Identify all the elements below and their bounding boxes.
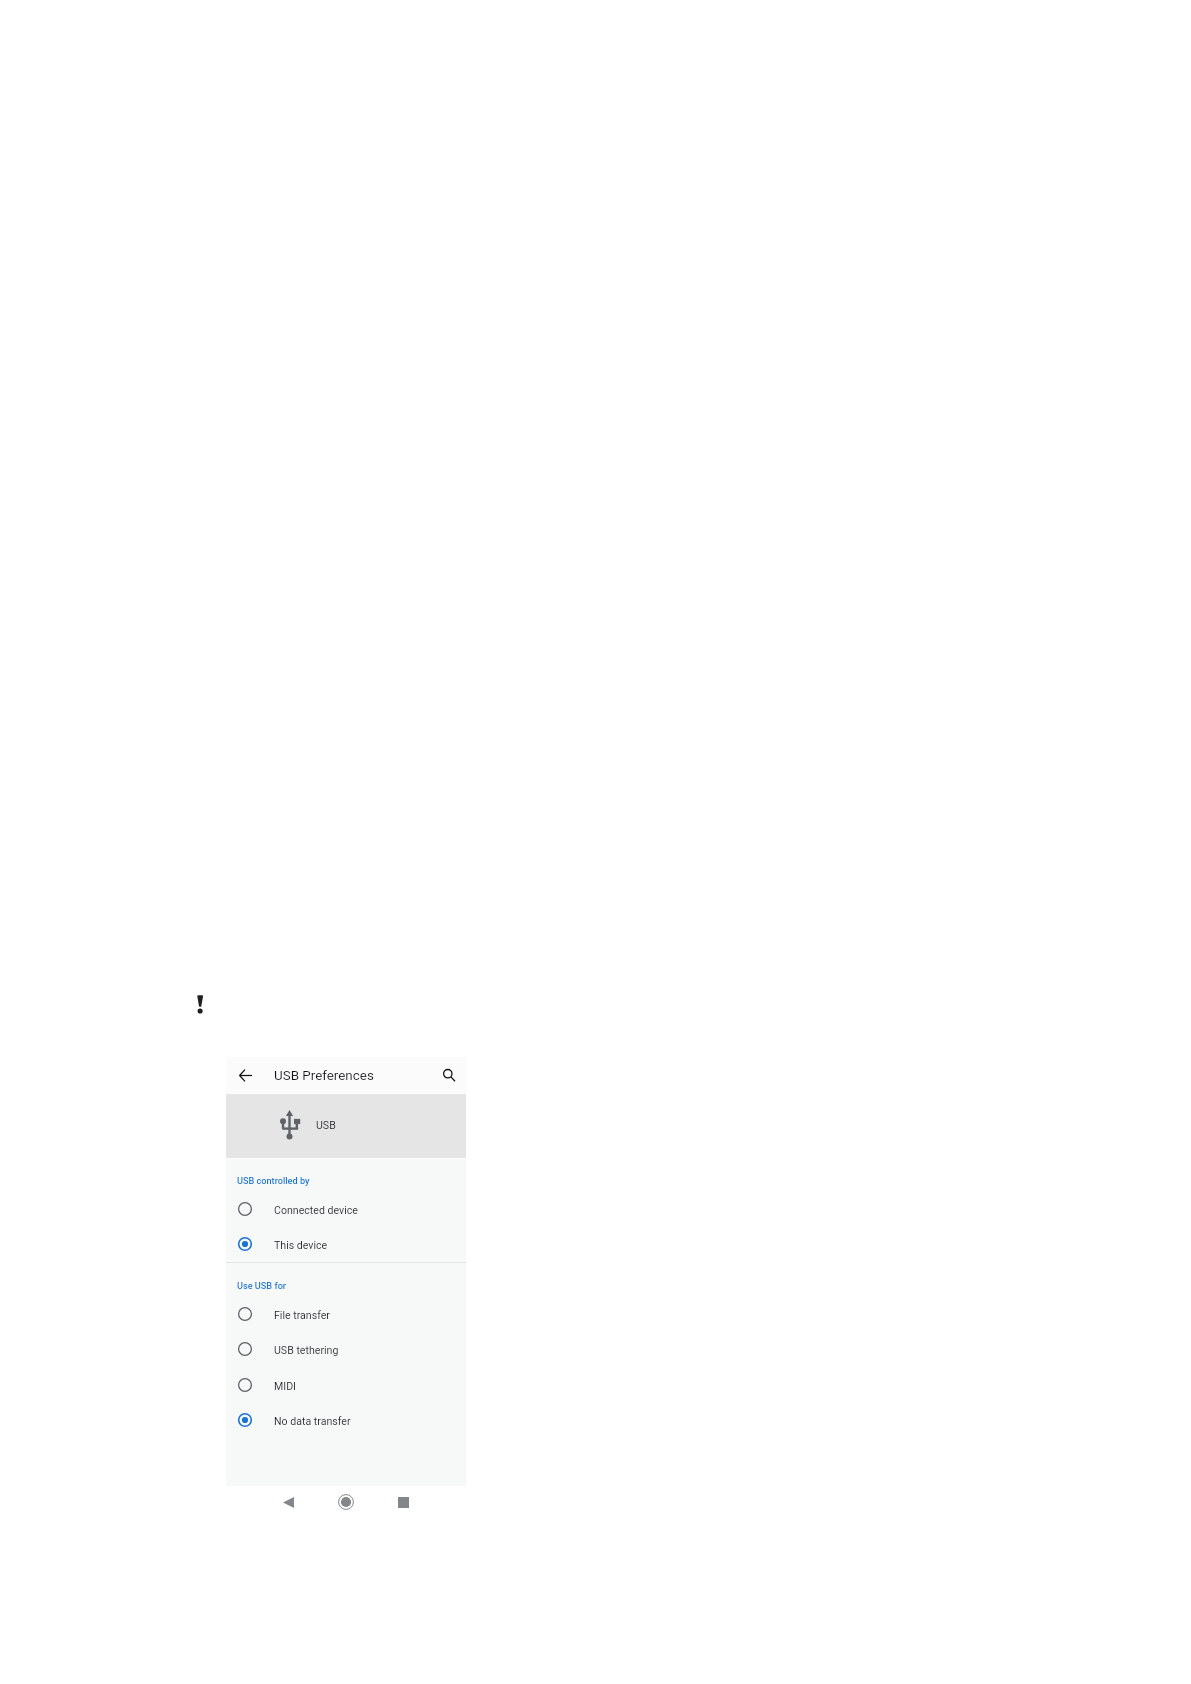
button[interactable]: Back <box>232 1062 258 1088</box>
button[interactable]: No data transfer <box>226 1403 466 1437</box>
button[interactable]: Search <box>436 1063 462 1089</box>
button[interactable]: Connected device <box>226 1192 466 1226</box>
button[interactable]: USB tethering <box>226 1332 466 1366</box>
button[interactable]: Back <box>275 1489 302 1516</box>
staticText: This device <box>274 1239 328 1251</box>
staticText: No data transfer <box>274 1415 351 1427</box>
staticText: USB tethering <box>274 1344 339 1356</box>
staticText: Use USB for <box>237 1281 287 1292</box>
staticText: MIDI <box>274 1380 296 1392</box>
staticText: Connected device <box>274 1204 358 1216</box>
button[interactable]: USB <box>226 1094 466 1158</box>
staticText: USB Preferences <box>274 1068 374 1084</box>
button[interactable]: File transfer <box>226 1297 466 1331</box>
button[interactable]: Recent apps <box>390 1489 417 1516</box>
staticText: USB controlled by <box>237 1176 310 1187</box>
button[interactable]: This device <box>226 1227 466 1261</box>
staticText: File transfer <box>274 1309 330 1321</box>
staticText: USB <box>316 1119 336 1131</box>
other: Warning <box>197 995 204 1014</box>
button[interactable]: Home <box>332 1488 359 1515</box>
button[interactable]: MIDI <box>226 1368 466 1402</box>
